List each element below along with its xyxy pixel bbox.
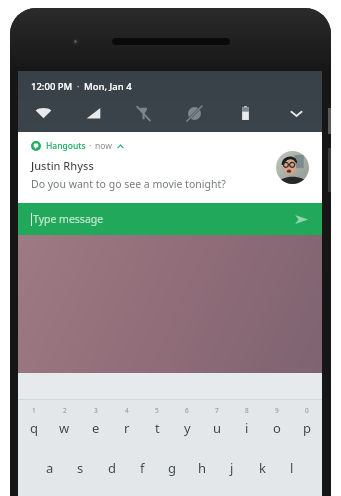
button[interactable]: Hangouts: [18, 132, 322, 203]
button[interactable]: d: [96, 456, 127, 480]
button[interactable]: Collapse notification: [116, 142, 124, 150]
staticText: Type message: [33, 212, 104, 226]
staticText: r: [124, 419, 130, 437]
staticText: Do you want to go see a movie tonight?: [31, 177, 226, 191]
button[interactable]: f: [127, 456, 157, 480]
button[interactable]: a: [34, 456, 65, 480]
staticText: w: [59, 419, 70, 437]
staticText: p: [303, 419, 311, 437]
button[interactable]: l: [277, 456, 307, 480]
button[interactable]: i: [232, 416, 262, 440]
staticText: 1: [32, 406, 36, 415]
staticText: e: [92, 419, 100, 437]
staticText: 7: [215, 406, 219, 415]
staticText: l: [290, 459, 294, 477]
button[interactable]: u: [202, 416, 232, 440]
staticText: t: [155, 419, 160, 437]
button[interactable]: Flashlight off: [118, 98, 169, 128]
button[interactable]: Contact photo: [276, 151, 309, 184]
button[interactable]: p: [292, 416, 322, 440]
staticText: j: [230, 459, 234, 477]
staticText: ·: [89, 140, 92, 152]
staticText: y: [184, 419, 191, 437]
staticText: 9: [275, 406, 279, 415]
button[interactable]: k: [247, 456, 277, 480]
staticText: s: [77, 459, 84, 477]
button[interactable]: s: [65, 456, 96, 480]
staticText: 5: [155, 406, 159, 415]
staticText: 12:00 PM: [31, 80, 73, 93]
staticText: 2: [63, 406, 67, 415]
staticText: 3: [94, 406, 98, 415]
button[interactable]: Auto-rotate off: [169, 98, 220, 128]
button[interactable]: Send: [291, 209, 311, 229]
staticText: g: [168, 459, 176, 477]
staticText: ·: [77, 80, 80, 93]
button[interactable]: g: [157, 456, 187, 480]
staticText: Mon, Jan 4: [84, 80, 132, 93]
button[interactable]: q: [18, 416, 49, 440]
button[interactable]: t: [142, 416, 172, 440]
staticText: Justin Rhyss: [31, 158, 94, 173]
staticText: 6: [185, 406, 189, 415]
button[interactable]: Expand quick settings: [271, 98, 322, 128]
staticText: Hangouts: [46, 140, 86, 152]
staticText: a: [46, 459, 54, 477]
button[interactable]: h: [187, 456, 217, 480]
staticText: f: [140, 459, 145, 477]
staticText: now: [95, 140, 112, 152]
button[interactable]: o: [262, 416, 292, 440]
staticText: i: [245, 419, 249, 437]
button[interactable]: j: [217, 456, 247, 480]
button[interactable]: Type message: [18, 203, 322, 235]
staticText: q: [30, 419, 38, 437]
button[interactable]: e: [80, 416, 111, 440]
staticText: 0: [305, 406, 309, 415]
button[interactable]: r: [111, 416, 142, 440]
staticText: 8: [245, 406, 249, 415]
button[interactable]: Battery: [220, 98, 271, 128]
button[interactable]: Mobile signal: [68, 98, 118, 128]
staticText: 4: [125, 406, 129, 415]
staticText: o: [273, 419, 281, 437]
staticText: h: [198, 459, 207, 477]
staticText: k: [259, 459, 266, 477]
button[interactable]: y: [172, 416, 202, 440]
staticText: u: [213, 419, 222, 437]
button[interactable]: Wi-Fi: [18, 98, 68, 128]
staticText: d: [108, 459, 116, 477]
button[interactable]: w: [49, 416, 80, 440]
